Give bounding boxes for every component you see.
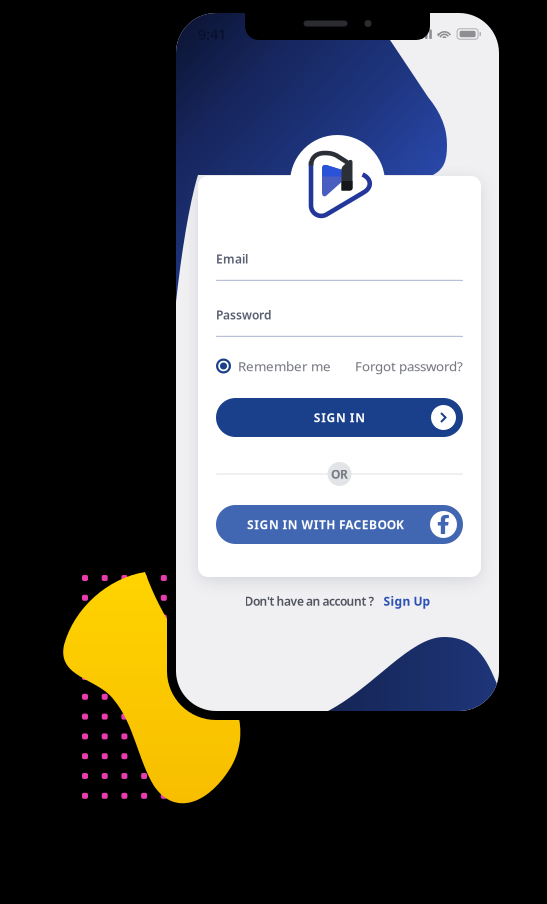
button[interactable]: Sign Up	[383, 593, 430, 609]
staticText: OR	[331, 466, 348, 482]
button[interactable]: Forgot password?	[355, 358, 463, 374]
staticText: Password	[216, 307, 272, 323]
staticText: Don't have an account ?	[244, 593, 374, 609]
staticText: SIGN IN	[314, 409, 365, 425]
button[interactable]: Remember me	[216, 358, 331, 374]
staticText: SIGN IN WITH FACEBOOK	[247, 516, 404, 532]
button[interactable]: SIGN IN WITH FACEBOOK	[216, 505, 463, 544]
staticText: Email	[216, 251, 248, 267]
staticText: 9:41	[198, 24, 226, 44]
staticText: Sign Up	[383, 593, 430, 609]
staticText: Forgot password?	[355, 357, 463, 375]
button[interactable]: SIGN IN	[216, 398, 463, 437]
staticText: Remember me	[238, 357, 331, 375]
